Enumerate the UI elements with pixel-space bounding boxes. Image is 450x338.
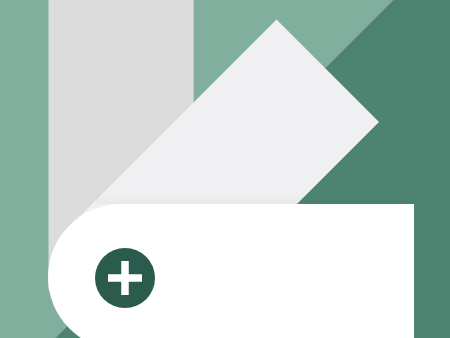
- button[interactable]: Add: [95, 248, 155, 308]
- button[interactable]: [48, 204, 414, 338]
